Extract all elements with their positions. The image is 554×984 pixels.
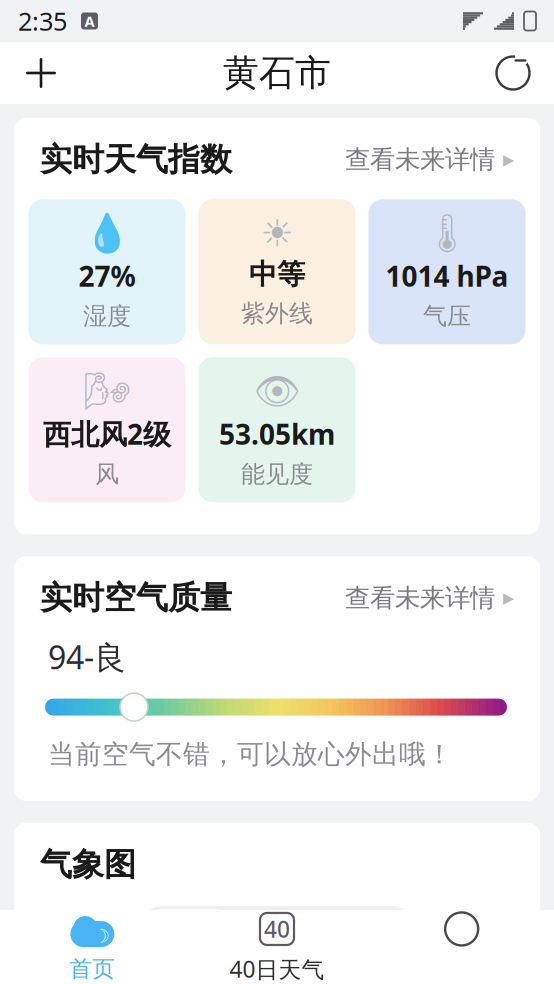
button[interactable]: 40 xyxy=(185,910,369,984)
staticText: 实时空气质量 xyxy=(40,578,232,618)
button[interactable]: ☽ xyxy=(0,910,185,984)
staticText: 🌡 xyxy=(423,212,470,255)
staticText: 中等 xyxy=(249,257,305,292)
button[interactable]: 查看未来详情 xyxy=(345,140,514,179)
staticText: 94-良 xyxy=(48,636,126,678)
staticText: 气象图 xyxy=(40,845,136,884)
staticText: 💧 xyxy=(84,212,130,255)
staticText: ▶ xyxy=(503,151,514,168)
staticText: 27% xyxy=(78,257,135,294)
staticText: 实时天气指数 xyxy=(40,140,232,179)
staticText: 🌬 xyxy=(83,370,130,413)
staticText: 查看未来详情 xyxy=(345,582,495,613)
staticText: 当前空气不错，可以放心外出哦！ xyxy=(48,738,453,771)
staticText: 👁 xyxy=(253,370,300,413)
staticText: 1014 hPa xyxy=(385,257,508,294)
staticText: 53.05km xyxy=(219,415,335,452)
staticText: A xyxy=(84,11,94,31)
button[interactable]: 刷新 xyxy=(486,46,540,100)
button[interactable]: 我的 xyxy=(369,910,554,984)
staticText: ☀ xyxy=(260,212,293,254)
staticText: 湿度 xyxy=(83,301,131,331)
button[interactable]: 添加城市 xyxy=(14,46,68,100)
staticText: 40 xyxy=(264,914,290,944)
button[interactable]: 查看未来详情 xyxy=(345,578,514,617)
button[interactable]: 气温 xyxy=(235,909,323,949)
staticText: 2:35 xyxy=(18,4,67,38)
staticText: 40日天气 xyxy=(229,954,324,984)
staticText: 紫外线 xyxy=(241,299,313,328)
staticText: ▶ xyxy=(503,590,514,606)
staticText: 黄石市 xyxy=(223,51,331,95)
staticText: 气压 xyxy=(423,301,471,331)
staticText: 首页 xyxy=(69,955,115,983)
staticText: 气温 xyxy=(252,913,306,946)
staticText: ☽ xyxy=(93,925,110,947)
staticText: 风 xyxy=(95,459,119,489)
staticText: 查看未来详情 xyxy=(345,144,495,175)
staticText: 西北风2级 xyxy=(43,415,171,452)
staticText: 能见度 xyxy=(241,459,313,489)
